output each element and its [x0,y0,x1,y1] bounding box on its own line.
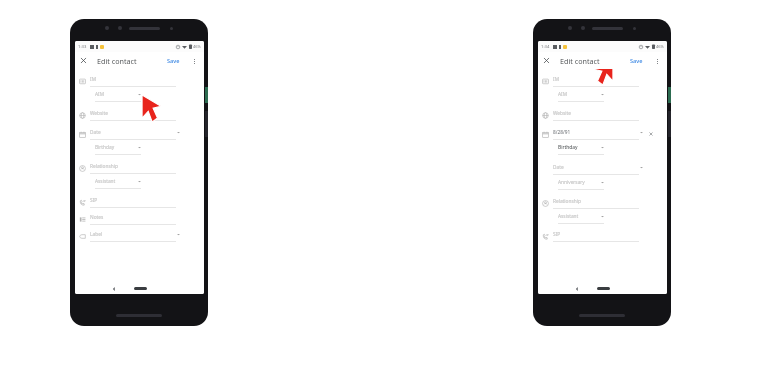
button[interactable]: Date [75,126,204,142]
button[interactable]: Close [75,52,92,69]
staticText: 1:33 [78,44,87,50]
button[interactable]: Website [538,107,667,123]
button[interactable]: Website [75,107,204,123]
staticText: Assistant [558,213,579,220]
button[interactable]: Back [572,284,582,294]
button[interactable]: AIM [538,89,667,104]
button[interactable]: More options [187,54,201,68]
button[interactable]: Assistant [75,176,204,191]
button[interactable]: Back [109,284,119,294]
staticText: Date [90,129,101,136]
button[interactable]: AIM [75,89,204,104]
staticText: AIM [95,91,105,98]
button[interactable]: Notes [75,211,204,227]
button[interactable]: Save [626,54,647,68]
staticText: AIM [558,91,568,98]
button[interactable]: SIP [538,228,667,244]
staticText: Label [90,231,103,238]
button[interactable]: Close [538,52,555,69]
staticText: Birthday [95,144,115,151]
staticText: Anniversary [558,179,585,186]
staticText: SIP [553,231,561,238]
staticText: Assistant [95,178,116,185]
staticText: 46% [656,44,664,49]
staticText: Relationship [553,198,581,205]
button[interactable]: Relationship [538,195,667,211]
staticText: IM [553,76,559,83]
staticText: Save [167,57,180,65]
staticText: Relationship [90,163,118,170]
button[interactable]: Date [538,161,667,177]
button[interactable]: More options [650,54,664,68]
button[interactable]: SIP [75,194,204,210]
staticText: Edit contact [97,56,137,66]
staticText: Edit contact [560,56,600,66]
staticText: Notes [90,214,104,221]
staticText: IM [90,76,96,83]
staticText: Birthday [558,144,578,151]
button[interactable]: Save [163,54,184,68]
button[interactable]: Clear date [647,130,655,138]
staticText: Website [553,110,571,117]
button[interactable]: Assistant [538,211,667,226]
button[interactable]: Home [131,284,149,293]
staticText: 1:34 [541,44,550,50]
button[interactable]: Label [75,228,204,244]
button[interactable]: Birthday [538,142,667,157]
staticText: SIP [90,197,98,204]
button[interactable]: 8/28/91 [538,126,667,142]
button[interactable]: IM [538,73,667,89]
staticText: 46% [193,44,201,49]
staticText: Website [90,110,108,117]
staticText: Save [630,57,643,65]
button[interactable]: Relationship [75,160,204,176]
staticText: 8/28/91 [553,129,571,136]
button[interactable]: Anniversary [538,177,667,192]
button[interactable]: Home [594,284,612,293]
button[interactable]: IM [75,73,204,89]
button[interactable]: Birthday [75,142,204,157]
staticText: Date [553,164,564,171]
